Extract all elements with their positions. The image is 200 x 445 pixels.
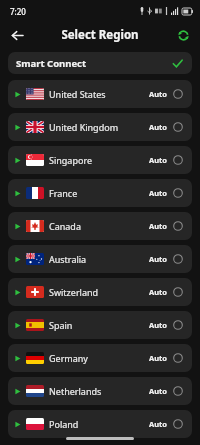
button[interactable]: Canada <box>8 212 192 240</box>
button[interactable]: United Kingdom <box>8 113 192 141</box>
staticText: Auto <box>149 254 168 264</box>
staticText: Canada <box>49 220 81 232</box>
staticText: Auto <box>149 155 168 165</box>
staticText: Poland <box>49 418 79 430</box>
button[interactable]: Switzerland <box>8 278 192 306</box>
button[interactable]: Spain <box>8 311 192 339</box>
staticText: United States <box>49 88 106 100</box>
staticText: Germany <box>49 352 88 364</box>
staticText: Auto <box>149 320 168 330</box>
button[interactable]: Smart Connect <box>8 52 192 74</box>
staticText: Netherlands <box>49 385 102 397</box>
button[interactable]: Poland <box>8 410 192 438</box>
staticText: Auto <box>149 419 168 429</box>
staticText: Australia <box>49 253 87 265</box>
staticText: Auto <box>149 221 168 231</box>
button[interactable]: Australia <box>8 245 192 273</box>
button[interactable]: United States <box>8 80 192 108</box>
staticText: Auto <box>149 122 168 132</box>
staticText: France <box>49 187 78 199</box>
staticText: Auto <box>149 386 168 396</box>
button[interactable]: Refresh <box>171 23 195 47</box>
button[interactable]: Back <box>4 22 30 48</box>
button[interactable]: France <box>8 179 192 207</box>
staticText: Auto <box>149 188 168 198</box>
staticText: Smart Connect <box>16 57 87 70</box>
button[interactable]: Singapore <box>8 146 192 174</box>
staticText: United Kingdom <box>49 121 119 133</box>
staticText: Auto <box>149 287 168 297</box>
staticText: Singapore <box>49 154 93 166</box>
staticText: Select Region <box>61 27 139 43</box>
staticText: Auto <box>149 353 168 363</box>
button[interactable]: Germany <box>8 344 192 372</box>
staticText: Auto <box>149 89 168 99</box>
staticText: 7:20 <box>10 6 26 17</box>
staticText: Spain <box>49 319 73 331</box>
button[interactable]: Netherlands <box>8 377 192 405</box>
staticText: Switzerland <box>49 286 99 298</box>
